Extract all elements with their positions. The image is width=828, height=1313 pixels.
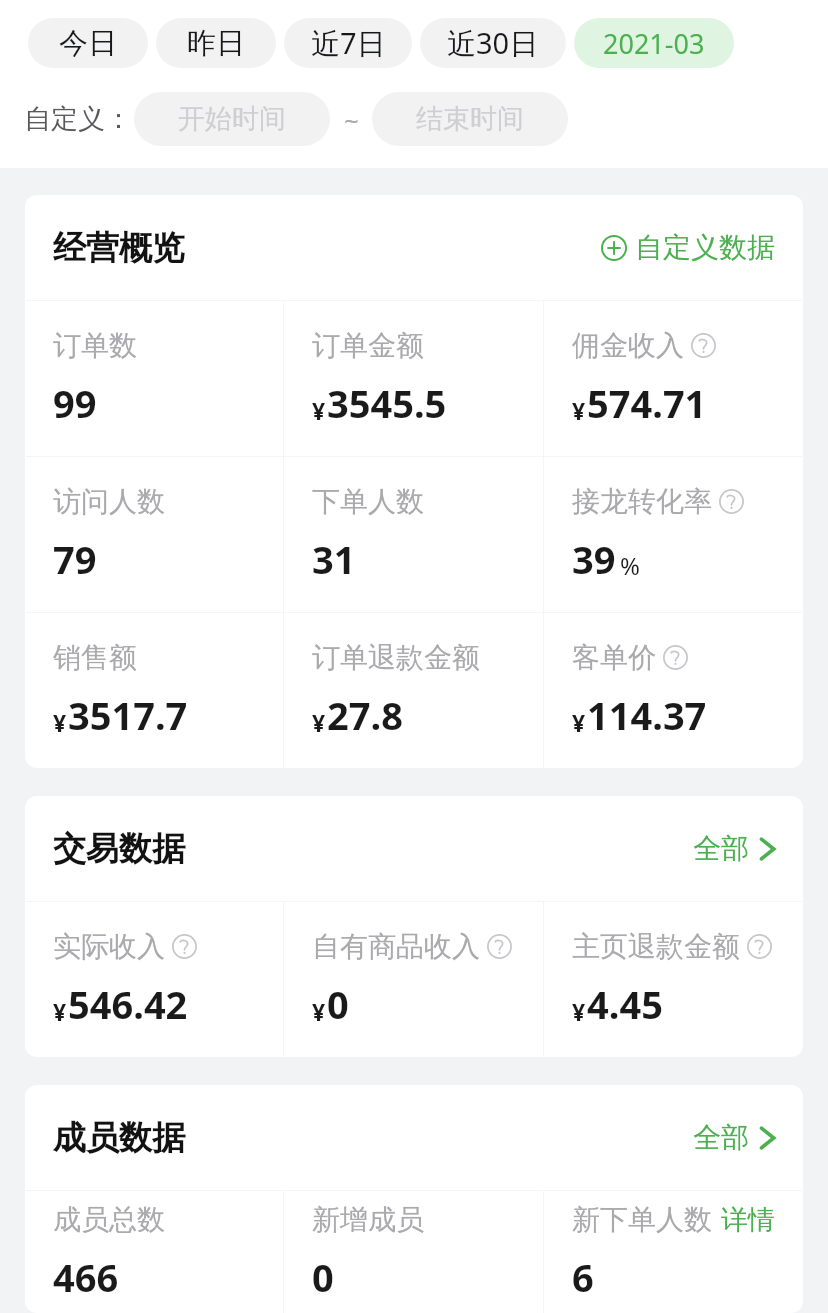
button[interactable]: 主页退款金额 — [544, 902, 803, 1057]
staticText: 全部 — [693, 831, 749, 866]
staticText: 466 — [53, 1251, 119, 1303]
staticText: 接龙转化率 — [572, 484, 712, 519]
staticText: 自定义数据 — [635, 230, 775, 265]
button[interactable]: 开始时间 — [134, 92, 330, 146]
staticText: ¥ — [572, 996, 586, 1027]
staticText: ¥ — [53, 707, 67, 738]
staticText: % — [620, 549, 640, 582]
staticText: 佣金收入 — [572, 328, 684, 363]
button[interactable]: 今日 — [28, 18, 148, 68]
button[interactable]: 2021-03 — [574, 18, 734, 68]
button[interactable]: 访问人数 — [25, 457, 283, 612]
staticText: 6 — [572, 1251, 594, 1303]
button[interactable]: 实际收入 — [25, 902, 283, 1057]
button[interactable]: 帮助 — [172, 934, 197, 959]
staticText: 访问人数 — [53, 484, 165, 519]
staticText: 客单价 — [572, 640, 656, 675]
button[interactable]: 销售额 — [25, 613, 283, 768]
button[interactable]: 结束时间 — [372, 92, 568, 146]
button[interactable]: 客单价 — [544, 613, 803, 768]
button[interactable]: 近30日 — [420, 18, 566, 68]
staticText: ¥ — [312, 707, 326, 738]
staticText: ¥ — [312, 996, 326, 1027]
staticText: 销售额 — [53, 640, 137, 675]
staticText: 成员数据 — [53, 1117, 185, 1159]
staticText: 3517.7 — [68, 689, 188, 741]
staticText: 自定义： — [24, 102, 132, 136]
staticText: 新增成员 — [312, 1202, 424, 1237]
staticText: ¥ — [572, 395, 586, 426]
button[interactable]: 全部 — [689, 1114, 779, 1161]
staticText: 下单人数 — [312, 484, 424, 519]
button[interactable]: 自有商品收入 — [284, 902, 543, 1057]
staticText: 99 — [53, 377, 97, 429]
staticText: 结束时间 — [416, 102, 524, 136]
staticText: 546.42 — [68, 978, 188, 1030]
staticText: 27.8 — [327, 689, 403, 741]
staticText: ¥ — [572, 707, 586, 738]
staticText: 今日 — [59, 25, 117, 62]
staticText: 订单金额 — [312, 328, 424, 363]
staticText: 近7日 — [311, 23, 386, 63]
button[interactable]: 订单数 — [25, 301, 283, 456]
button[interactable]: 全部 — [689, 825, 779, 872]
staticText: 2021-03 — [603, 25, 705, 62]
staticText: 全部 — [693, 1120, 749, 1155]
button[interactable]: 帮助 — [719, 489, 744, 514]
staticText: 详情 — [721, 1203, 775, 1237]
staticText: 114.37 — [587, 689, 707, 741]
button[interactable]: 订单金额 — [284, 301, 543, 456]
staticText: 开始时间 — [178, 102, 286, 136]
staticText: 0 — [327, 978, 349, 1030]
button[interactable]: 帮助 — [691, 333, 716, 358]
button[interactable]: 自定义数据 — [597, 226, 779, 269]
button[interactable]: 近7日 — [284, 18, 412, 68]
staticText: ¥ — [312, 395, 326, 426]
staticText: 新下单人数 — [572, 1202, 712, 1237]
staticText: 经营概览 — [53, 227, 185, 269]
staticText: 39 — [572, 533, 616, 585]
staticText: 自有商品收入 — [312, 929, 480, 964]
staticText: 4.45 — [587, 978, 663, 1030]
button[interactable]: 新增成员 — [284, 1191, 543, 1313]
button[interactable]: 佣金收入 — [544, 301, 803, 456]
staticText: 交易数据 — [53, 828, 185, 870]
staticText: 成员总数 — [53, 1202, 165, 1237]
button[interactable]: 订单退款金额 — [284, 613, 543, 768]
staticText: ~ — [344, 102, 359, 137]
button[interactable]: 帮助 — [487, 934, 512, 959]
button[interactable]: 帮助 — [747, 934, 772, 959]
button[interactable]: 昨日 — [156, 18, 276, 68]
staticText: ¥ — [53, 996, 67, 1027]
staticText: 近30日 — [447, 23, 539, 63]
staticText: 订单数 — [53, 328, 137, 363]
staticText: 31 — [312, 533, 356, 585]
staticText: 3545.5 — [327, 377, 447, 429]
button[interactable]: 帮助 — [663, 645, 688, 670]
button[interactable]: 接龙转化率 — [544, 457, 803, 612]
staticText: 574.71 — [587, 377, 707, 429]
staticText: 实际收入 — [53, 929, 165, 964]
button[interactable]: 成员总数 — [25, 1191, 283, 1313]
staticText: 订单退款金额 — [312, 640, 480, 675]
staticText: 主页退款金额 — [572, 929, 740, 964]
button[interactable]: 详情 — [721, 1203, 775, 1237]
staticText: 0 — [312, 1251, 334, 1303]
button[interactable]: 新下单人数 — [544, 1191, 803, 1313]
staticText: 79 — [53, 533, 97, 585]
staticText: 昨日 — [187, 25, 245, 62]
button[interactable]: 下单人数 — [284, 457, 543, 612]
